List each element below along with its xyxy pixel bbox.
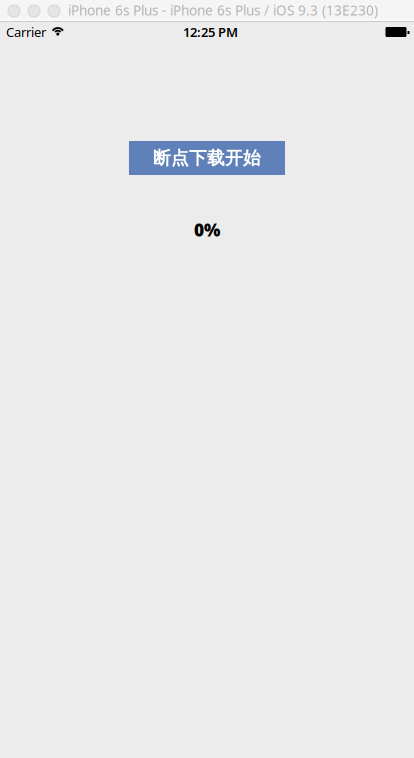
staticText: Carrier — [6, 23, 46, 41]
staticText: 断点下载开始 — [153, 147, 261, 169]
staticText: iPhone 6s Plus - iPhone 6s Plus / iOS 9.… — [68, 1, 378, 19]
staticText: 12:25 PM — [183, 23, 238, 41]
staticText: 0% — [194, 218, 220, 242]
button[interactable]: 断点下载开始 — [129, 141, 285, 175]
